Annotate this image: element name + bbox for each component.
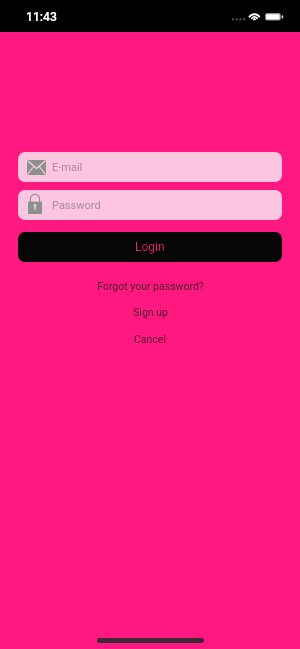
staticText: E-mail [52, 161, 83, 174]
staticText: Password [52, 199, 101, 212]
button[interactable]: Forgot your password? [0, 280, 300, 292]
button[interactable]: Password [18, 190, 282, 220]
button[interactable]: Login [18, 232, 282, 262]
other: Battery [265, 12, 284, 21]
other: E-mail [27, 160, 46, 175]
button[interactable]: Sign up [0, 306, 300, 318]
button[interactable]: Cancel [0, 333, 300, 345]
staticText: Cancel [134, 333, 166, 345]
staticText: Login [135, 240, 165, 254]
staticText: 11:43 [26, 10, 57, 24]
other: Wi-Fi [247, 10, 261, 22]
other: Cellular signal [231, 18, 245, 22]
staticText: Sign up [133, 306, 168, 318]
button[interactable]: E-mail [18, 152, 282, 182]
other: Password [27, 194, 43, 214]
staticText: Forgot your password? [97, 280, 204, 292]
